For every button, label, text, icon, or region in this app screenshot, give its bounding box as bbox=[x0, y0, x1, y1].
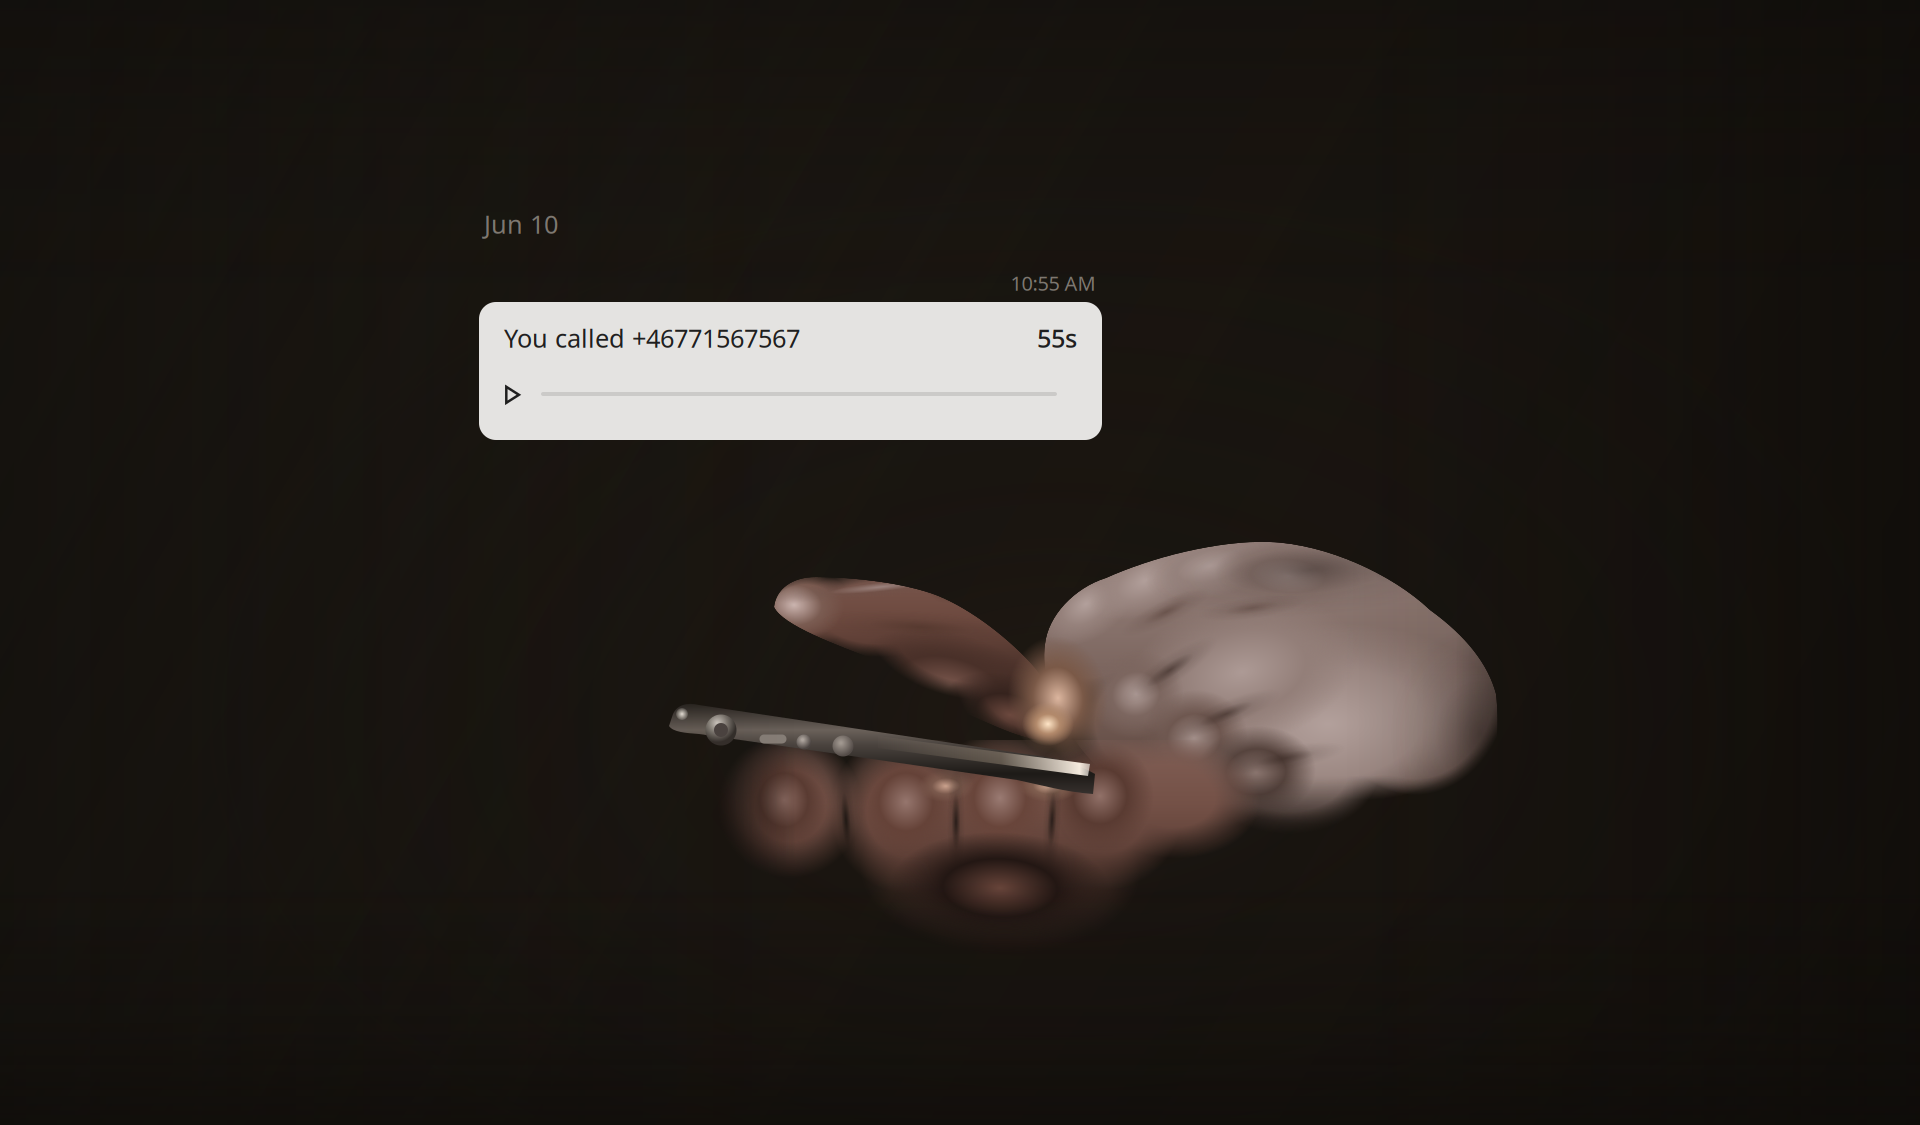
staticText: Jun 10 bbox=[484, 207, 558, 241]
button[interactable]: You called +46771567567 bbox=[479, 302, 1102, 440]
staticText: 55s bbox=[1037, 321, 1077, 355]
staticText: You called +46771567567 bbox=[504, 321, 800, 355]
staticText: 10:55 AM bbox=[1010, 270, 1095, 296]
